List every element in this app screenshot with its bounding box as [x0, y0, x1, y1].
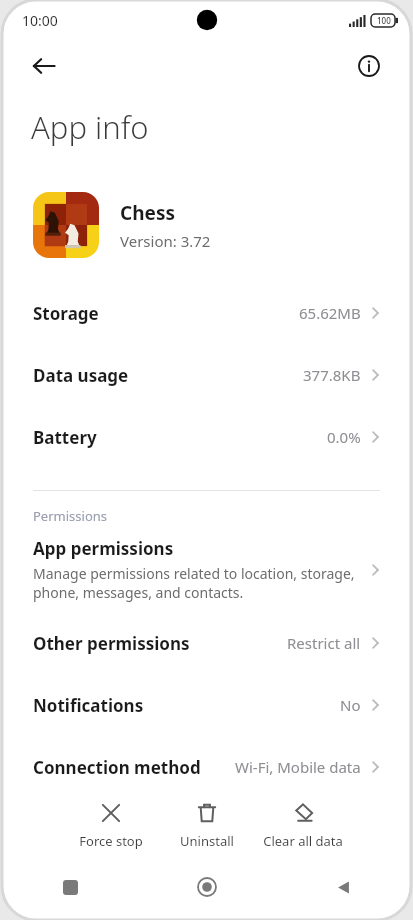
button[interactable]: Data usage: [2, 344, 411, 406]
button[interactable]: Notifications: [2, 674, 411, 736]
button[interactable]: Battery: [2, 406, 411, 468]
button[interactable]: Force stop: [63, 797, 159, 854]
staticText: Clear all data: [263, 832, 343, 850]
staticText: Permissions: [33, 507, 108, 525]
staticText: No: [340, 695, 361, 715]
staticText: App info: [31, 106, 149, 148]
staticText: 377.8KB: [303, 365, 361, 385]
staticText: 100: [377, 15, 391, 26]
staticText: 10:00: [22, 11, 58, 30]
other: Clear all data: [291, 801, 315, 825]
button[interactable]: Other permissions: [2, 612, 411, 674]
button[interactable]: Recent apps: [2, 864, 139, 910]
button[interactable]: App details info: [349, 46, 389, 86]
staticText: Other permissions: [33, 632, 190, 655]
staticText: Chess: [120, 200, 175, 226]
other: Uninstall: [195, 801, 219, 825]
staticText: 65.62MB: [299, 303, 361, 323]
button[interactable]: Clear all data: [255, 797, 351, 854]
button[interactable]: Connection method: [2, 736, 411, 798]
staticText: Wi-Fi, Mobile data: [235, 757, 361, 777]
other: Force stop: [99, 801, 123, 825]
button[interactable]: Uninstall: [159, 797, 255, 854]
staticText: Manage permissions related to location, …: [33, 564, 355, 602]
staticText: App permissions: [33, 537, 174, 560]
staticText: Battery: [33, 426, 97, 449]
staticText: Data usage: [33, 364, 129, 387]
staticText: Storage: [33, 302, 99, 325]
staticText: Uninstall: [180, 832, 234, 850]
staticText: 0.0%: [327, 427, 361, 447]
staticText: Version: 3.72: [120, 231, 211, 251]
staticText: Connection method: [33, 756, 201, 779]
button[interactable]: App permissions: [2, 535, 411, 612]
button[interactable]: Home: [139, 864, 275, 910]
button[interactable]: Back: [275, 864, 411, 910]
button[interactable]: Back: [24, 46, 64, 86]
staticText: Restrict all: [287, 633, 361, 653]
staticText: Force stop: [79, 832, 143, 850]
staticText: Notifications: [33, 694, 144, 717]
button[interactable]: Storage: [2, 282, 411, 344]
